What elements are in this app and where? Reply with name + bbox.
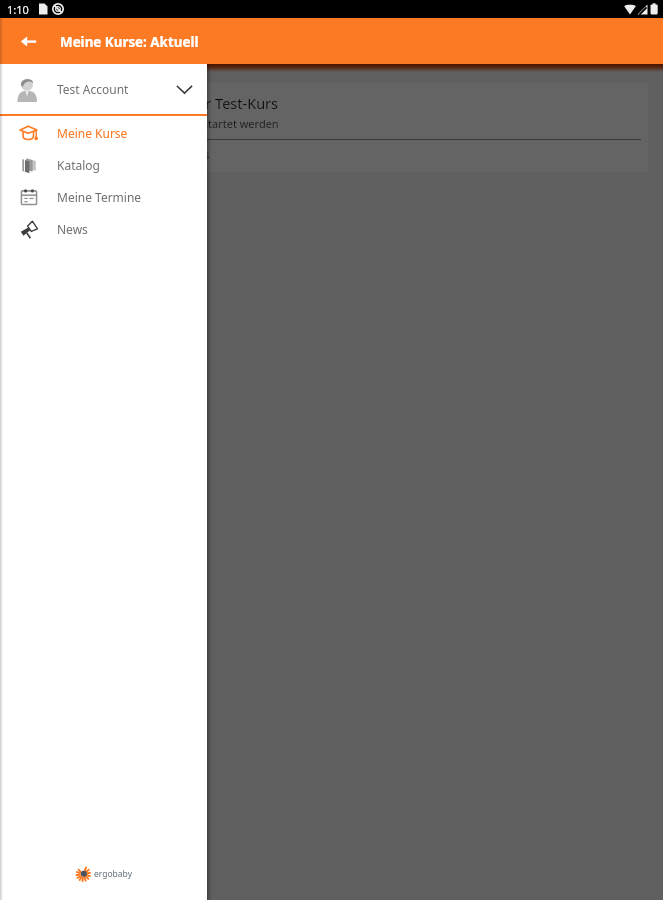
staticText: Kurs kann gestartet werden bbox=[135, 116, 279, 131]
button[interactable] bbox=[0, 64, 663, 900]
staticText: Mein erster Test-Kurs bbox=[133, 93, 279, 113]
staticText: Meine Kurse: Aktuell bbox=[60, 33, 199, 51]
button[interactable]: Zurück bbox=[5, 18, 51, 64]
staticText: Meine Termine bbox=[57, 189, 142, 205]
button[interactable]: News bbox=[0, 213, 207, 245]
staticText: 1:10 bbox=[7, 2, 29, 17]
staticText: Test Account bbox=[57, 81, 129, 97]
staticText: ergobaby bbox=[94, 868, 132, 880]
button[interactable]: Katalog bbox=[0, 149, 207, 181]
button[interactable]: Test Account bbox=[0, 64, 207, 114]
staticText: Katalog bbox=[57, 157, 100, 173]
staticText: Meine Kurse bbox=[57, 125, 128, 141]
staticText: Details bbox=[174, 147, 210, 162]
staticText: News bbox=[57, 221, 88, 237]
button[interactable]: Meine Kurse bbox=[0, 117, 207, 149]
button[interactable]: Meine Termine bbox=[0, 181, 207, 213]
